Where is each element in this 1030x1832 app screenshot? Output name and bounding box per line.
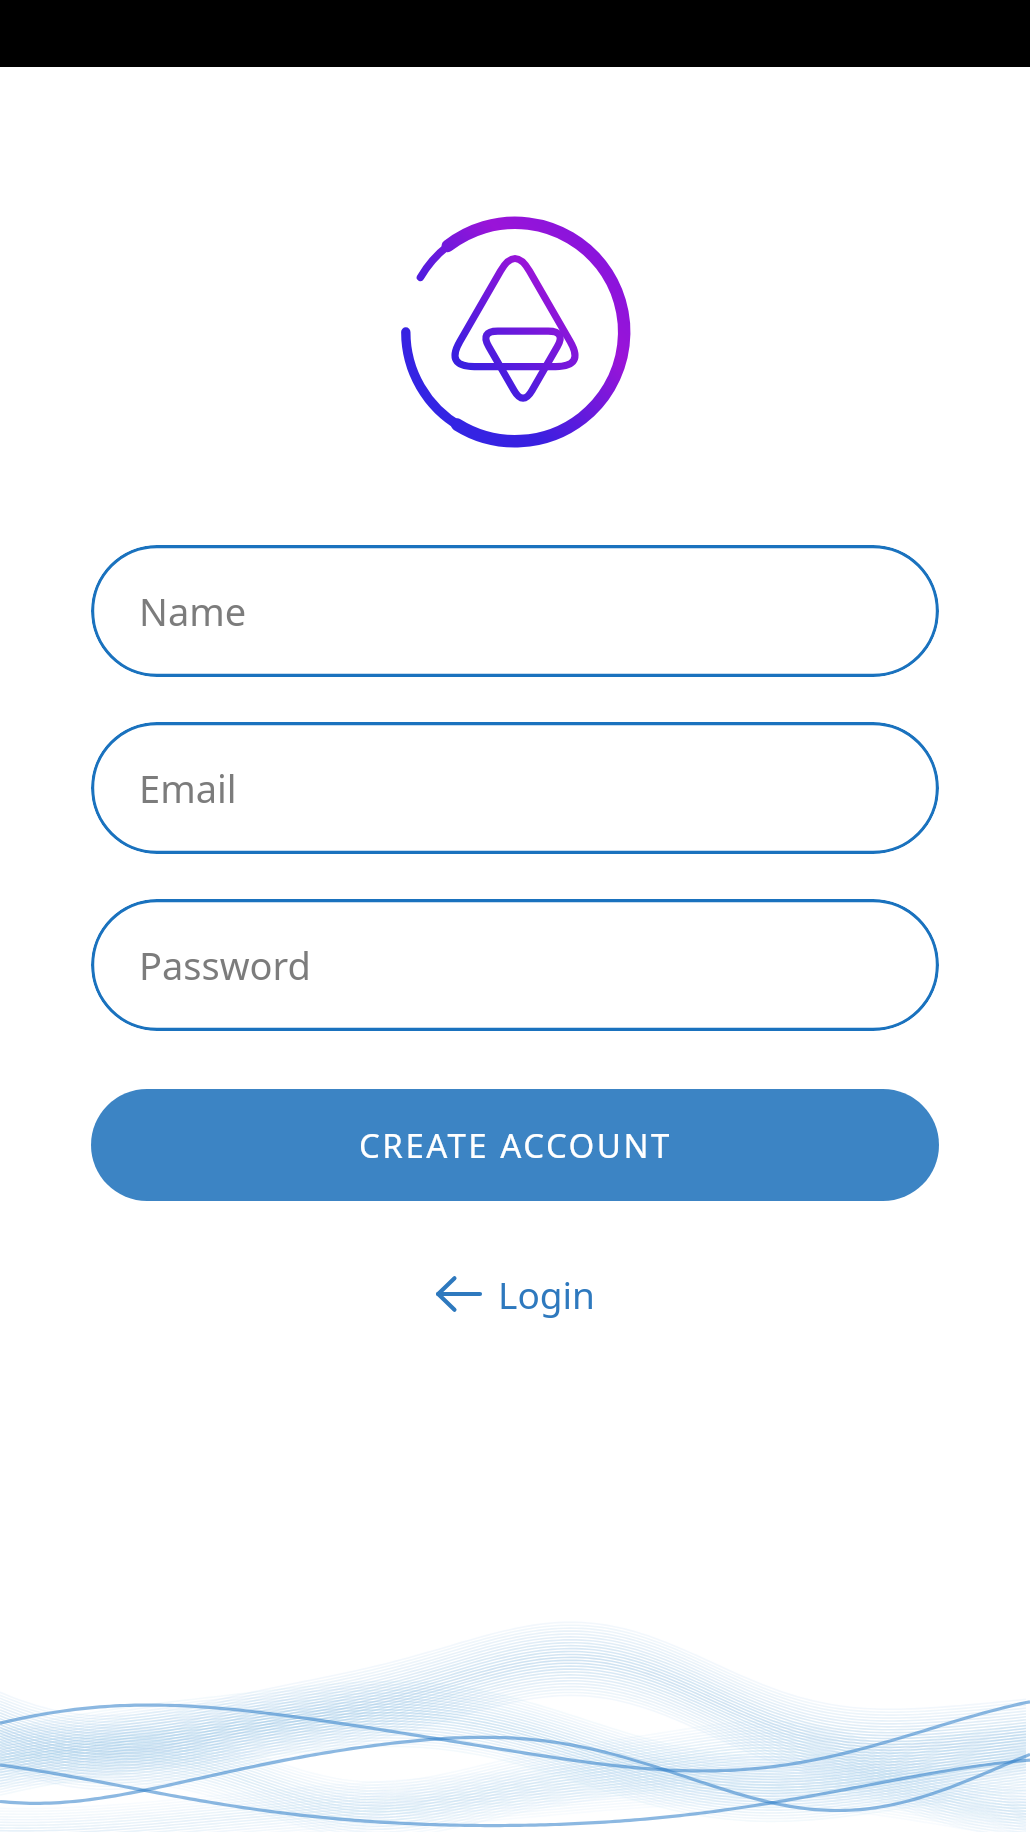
other: Back to login bbox=[436, 1276, 480, 1312]
staticText: Password bbox=[139, 939, 311, 991]
button[interactable]: Back to login bbox=[416, 1257, 615, 1331]
button[interactable]: Name bbox=[91, 545, 939, 677]
staticText: Name bbox=[139, 585, 247, 637]
staticText: CREATE ACCOUNT bbox=[359, 1123, 672, 1168]
button[interactable]: CREATE ACCOUNT bbox=[91, 1089, 939, 1201]
button[interactable]: Password bbox=[91, 899, 939, 1031]
staticText: Login bbox=[498, 1269, 595, 1319]
button[interactable]: Email bbox=[91, 722, 939, 854]
staticText: Email bbox=[139, 762, 237, 814]
